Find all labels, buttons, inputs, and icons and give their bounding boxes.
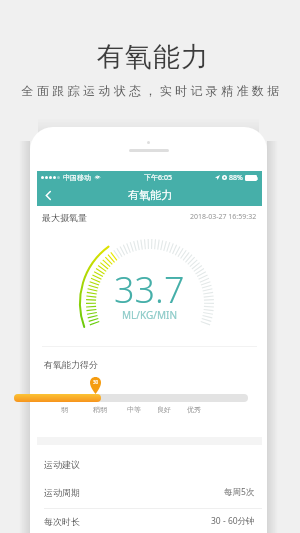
staticText: 运动周期 (44, 487, 80, 498)
staticText: 30 (93, 379, 99, 385)
button[interactable]: 每次时长 (37, 509, 262, 533)
staticText: 每次时长 (44, 516, 80, 527)
staticText: 2018-03-27 16:59:32 (190, 212, 257, 222)
staticText: 优秀 (187, 405, 201, 414)
staticText: 全面跟踪运动状态，实时记录精准数据 (2, 83, 300, 98)
staticText: 良好 (157, 405, 171, 414)
staticText: 弱 (61, 405, 68, 414)
staticText: ML/KG/MIN (122, 308, 178, 322)
staticText: 有氧能力 (128, 188, 172, 202)
staticText: 有氧能力得分 (44, 359, 98, 370)
staticText: 中等 (127, 405, 141, 414)
staticText: 运动建议 (44, 459, 80, 470)
staticText: 30 - 60分钟 (211, 515, 255, 527)
staticText: 稍弱 (93, 405, 107, 414)
staticText: 中国移动 (63, 173, 91, 182)
button[interactable]: 运动周期 (37, 476, 262, 508)
staticText: 下午6:05 (144, 173, 172, 183)
staticText: 88% (229, 173, 243, 183)
staticText: 每周5次 (224, 486, 255, 498)
staticText: 有氧能力 (3, 40, 300, 74)
staticText: 最大摄氧量 (42, 212, 87, 223)
staticText: 33.7 (114, 265, 185, 314)
button[interactable]: Back (37, 184, 59, 206)
